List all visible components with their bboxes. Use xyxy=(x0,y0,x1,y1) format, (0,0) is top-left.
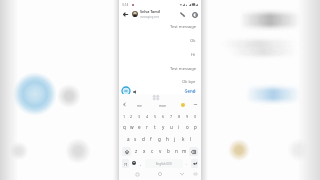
staticText: c xyxy=(151,148,154,154)
button[interactable]: 5 xyxy=(151,111,159,121)
button[interactable]: Search xyxy=(173,101,193,108)
staticText: 6 xyxy=(162,114,165,119)
button[interactable]: Call xyxy=(178,10,187,19)
button[interactable]: Gallery xyxy=(132,89,137,94)
button[interactable]: man xyxy=(152,101,173,108)
button[interactable]: m xyxy=(180,145,188,157)
button[interactable]: w xyxy=(128,121,135,133)
staticText: 1 xyxy=(123,114,126,119)
button[interactable]: Video call xyxy=(190,10,199,19)
button[interactable]: u xyxy=(167,121,175,133)
button[interactable]: k xyxy=(179,133,187,145)
button[interactable]: v xyxy=(156,145,164,157)
button[interactable]: Enter xyxy=(191,159,198,168)
button[interactable]: x xyxy=(140,145,148,157)
button[interactable]: Hi xyxy=(191,52,196,58)
button[interactable]: g xyxy=(155,133,163,145)
button[interactable]: Recents xyxy=(132,169,142,179)
button[interactable]: Previous suggestions xyxy=(122,102,127,107)
staticText: v xyxy=(159,148,162,154)
button[interactable]: s xyxy=(132,133,139,145)
staticText: y xyxy=(162,124,165,130)
staticText: Send xyxy=(185,88,196,94)
staticText: n xyxy=(175,148,178,154)
staticText: Test message xyxy=(170,24,196,30)
staticText: p xyxy=(194,124,197,130)
button[interactable]: Ok xyxy=(190,38,196,44)
button[interactable]: 6 xyxy=(159,111,167,121)
button[interactable]: b xyxy=(164,145,172,157)
staticText: o xyxy=(186,124,189,130)
staticText: Test message xyxy=(170,66,196,72)
staticText: Hi xyxy=(191,52,196,58)
staticText: d xyxy=(142,136,145,142)
button[interactable]: Back xyxy=(121,10,129,18)
button[interactable]: Home xyxy=(155,169,165,179)
button[interactable]: Emoji xyxy=(130,157,138,169)
button[interactable]: 7 xyxy=(167,111,175,121)
button[interactable]: e xyxy=(135,121,143,133)
button[interactable]: i xyxy=(175,121,183,133)
staticText: w xyxy=(130,124,134,130)
button[interactable]: j xyxy=(171,133,179,145)
button[interactable]: d xyxy=(139,133,147,145)
button[interactable]: 4 xyxy=(143,111,151,121)
button[interactable]: Hide keyboard xyxy=(177,169,187,179)
button[interactable]: 3 xyxy=(135,111,143,121)
button[interactable]: More options xyxy=(193,102,198,107)
button[interactable]: n xyxy=(172,145,180,157)
button[interactable]: 0 xyxy=(191,111,199,121)
staticText: 3 xyxy=(138,114,141,119)
button[interactable]: l xyxy=(187,133,195,145)
button[interactable]: r xyxy=(143,121,151,133)
button[interactable]: Test message xyxy=(170,66,196,72)
button[interactable]: c xyxy=(148,145,156,157)
button[interactable]: Switch keyboard xyxy=(191,170,199,178)
button[interactable]: z xyxy=(132,145,140,157)
staticText: 8 xyxy=(178,114,181,119)
button[interactable]: 2 xyxy=(128,111,135,121)
staticText: 9 xyxy=(186,114,189,119)
staticText: a xyxy=(127,136,130,142)
staticText: , xyxy=(140,161,142,166)
button[interactable]: . xyxy=(184,157,190,169)
button[interactable]: Shift xyxy=(122,147,131,156)
staticText: f xyxy=(150,136,152,142)
staticText: e xyxy=(138,124,141,130)
staticText: 4 xyxy=(146,114,149,119)
button[interactable]: Send xyxy=(185,88,196,94)
button[interactable]: Backspace xyxy=(189,147,198,156)
button[interactable]: Space xyxy=(145,159,183,168)
staticText: me xyxy=(137,103,142,107)
button[interactable]: Ok bye xyxy=(182,79,196,85)
button[interactable]: 9 xyxy=(183,111,191,121)
button[interactable]: Camera xyxy=(122,87,130,95)
staticText: b xyxy=(167,148,170,154)
staticText: q xyxy=(123,124,126,130)
staticText: 3:14 xyxy=(122,3,129,7)
button[interactable]: t xyxy=(151,121,159,133)
staticText: g xyxy=(158,136,161,142)
staticText: English (US) xyxy=(156,162,172,166)
staticText: 5 xyxy=(154,114,157,119)
button[interactable]: o xyxy=(183,121,191,133)
button[interactable]: y xyxy=(159,121,167,133)
button[interactable]: f xyxy=(147,133,155,145)
staticText: man xyxy=(159,103,166,107)
staticText: t xyxy=(154,124,156,130)
button[interactable]: , xyxy=(138,157,144,169)
button[interactable]: Test message xyxy=(170,24,196,30)
button[interactable]: 8 xyxy=(175,111,183,121)
button[interactable]: ?1 xyxy=(122,159,129,168)
button[interactable]: me xyxy=(127,101,152,108)
staticText: z xyxy=(135,148,138,154)
staticText: x xyxy=(143,148,146,154)
staticText: l xyxy=(190,136,192,142)
button[interactable]: p xyxy=(191,121,199,133)
button[interactable]: a xyxy=(125,133,132,145)
staticText: Selva Tamil xyxy=(140,9,160,14)
button[interactable]: q xyxy=(121,121,128,133)
button[interactable]: h xyxy=(163,133,171,145)
staticText: i xyxy=(178,124,180,130)
button[interactable]: 1 xyxy=(121,111,128,121)
